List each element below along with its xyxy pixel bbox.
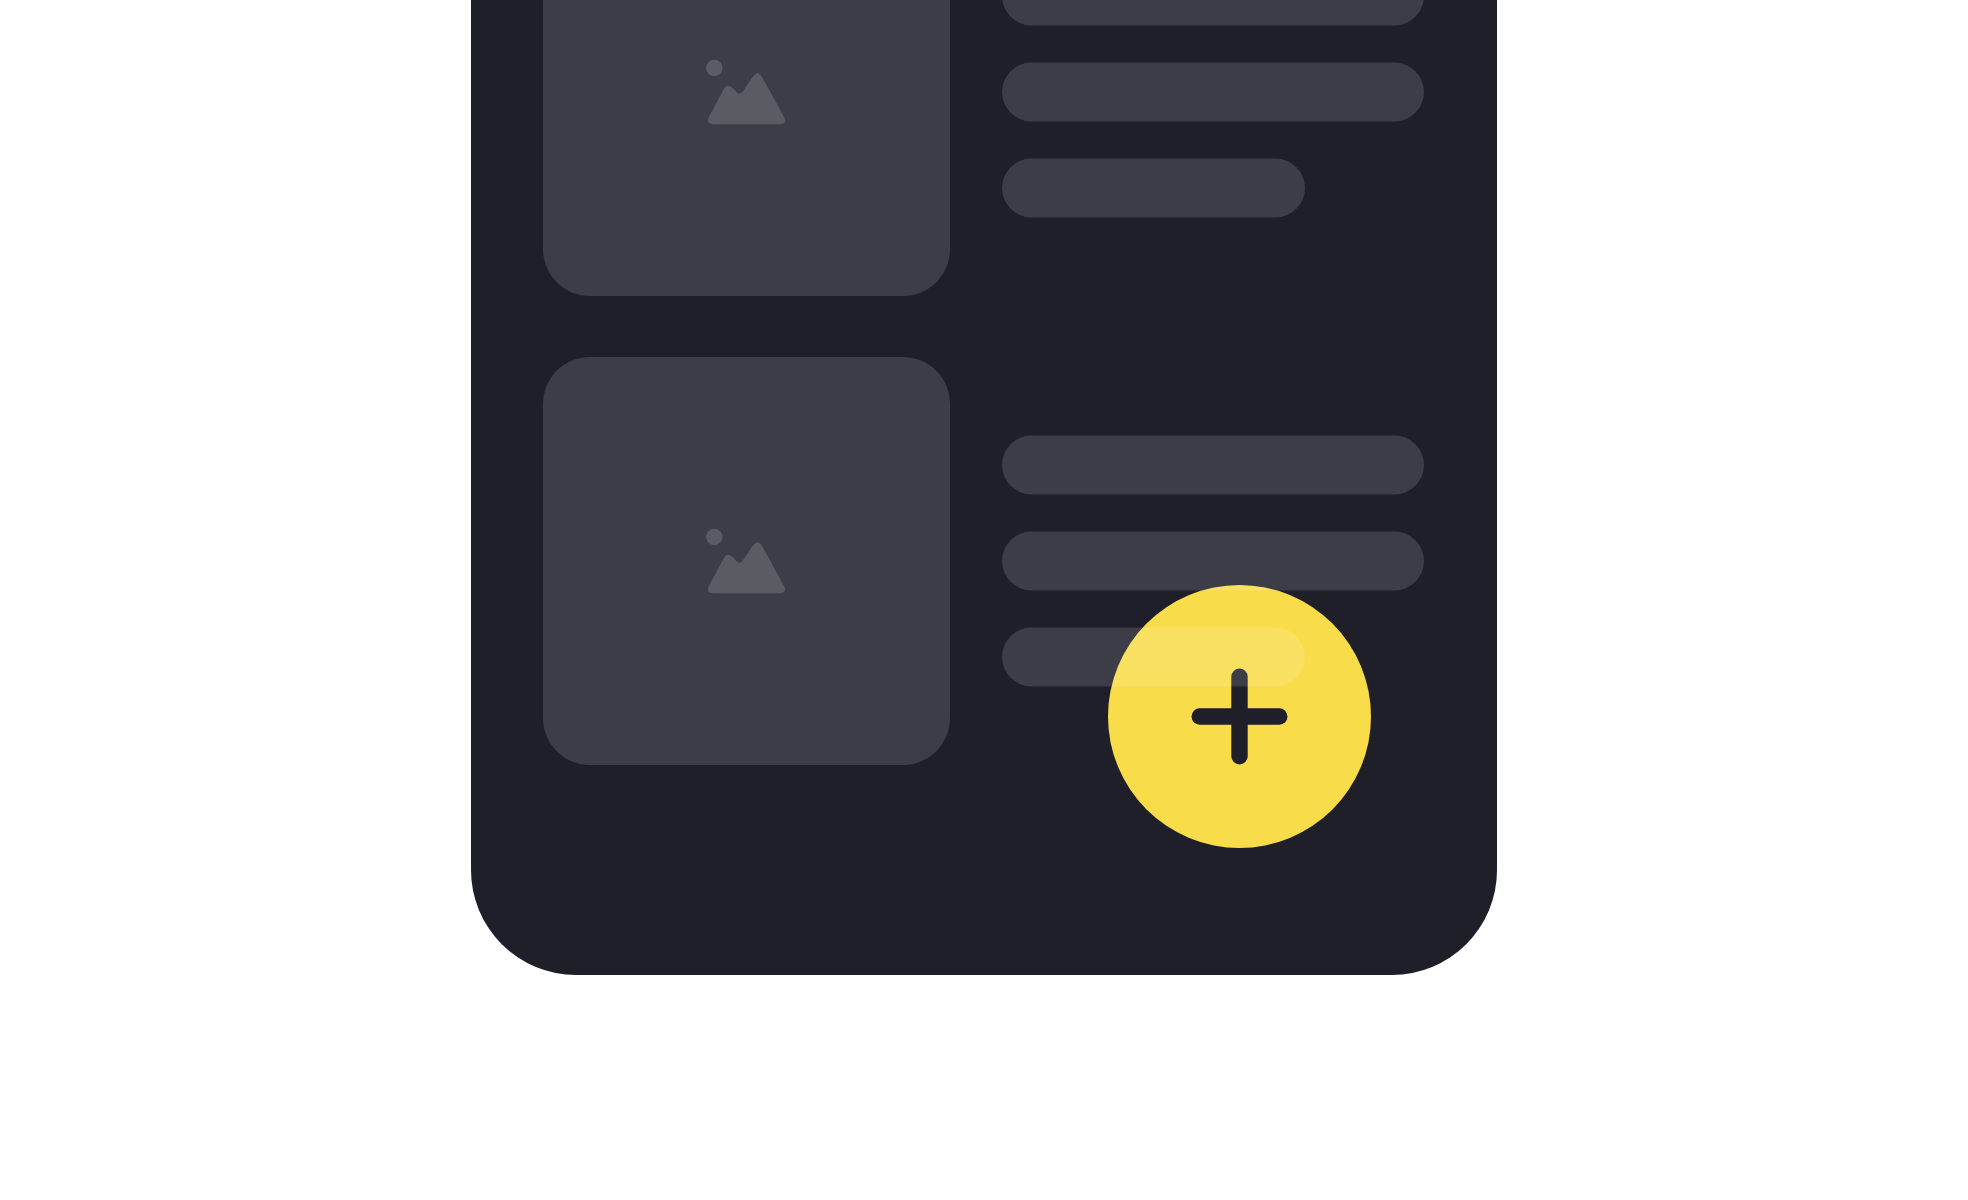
button[interactable]: Loading post 2 xyxy=(543,357,1424,765)
button[interactable]: New post xyxy=(1108,585,1371,848)
button[interactable]: Loading post 1 xyxy=(543,0,1424,296)
